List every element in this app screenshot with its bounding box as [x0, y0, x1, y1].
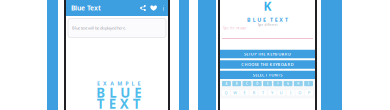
button[interactable]: CHOOSE THE KEYBOARD	[220, 60, 315, 69]
staticText: Type the message	[223, 26, 247, 30]
staticText: H	[297, 82, 299, 85]
staticText: E	[267, 82, 268, 85]
button[interactable]: P	[305, 90, 313, 95]
button[interactable]: W	[231, 90, 239, 95]
button[interactable]: A	[222, 81, 231, 86]
staticText: Y	[271, 90, 273, 95]
staticText: O	[298, 90, 301, 95]
staticText: CHOOSE THE KEYBOARD	[241, 62, 294, 67]
staticText: BLUE	[96, 84, 141, 101]
button[interactable]: G	[284, 81, 292, 86]
button[interactable]: E	[240, 90, 248, 95]
staticText: EXAMPLE	[97, 80, 141, 87]
staticText: C	[246, 82, 248, 85]
staticText: R	[253, 90, 255, 95]
button[interactable]: H	[294, 81, 303, 86]
staticText: A	[225, 82, 227, 85]
staticText: SETUP THE KEYBOARD	[244, 51, 291, 57]
button[interactable]: I	[286, 90, 294, 95]
staticText: I	[290, 90, 291, 95]
button[interactable]: E	[263, 81, 272, 86]
button[interactable]: F	[273, 81, 282, 86]
button[interactable]: U	[277, 90, 285, 95]
button[interactable]: Favorite	[148, 0, 159, 16]
button[interactable]: R	[250, 90, 258, 95]
staticText: U	[280, 90, 283, 95]
staticText: G	[287, 82, 289, 85]
staticText: E	[243, 90, 245, 95]
button[interactable]: SETUP THE KEYBOARD	[220, 50, 315, 58]
button[interactable]: Info	[159, 0, 167, 16]
staticText: K	[263, 0, 271, 14]
staticText: Type different	[257, 23, 277, 27]
button[interactable]: Share	[138, 0, 148, 16]
button[interactable]: C	[242, 81, 251, 86]
staticText: SELECT FONTS	[253, 72, 282, 78]
staticText: Blue text will be displayed here.	[72, 25, 126, 31]
staticText: T	[262, 90, 264, 95]
staticText: P	[308, 90, 310, 95]
staticText: W	[233, 90, 237, 95]
button[interactable]: D	[253, 81, 262, 86]
button[interactable]: Q	[222, 90, 230, 95]
staticText: D	[256, 82, 258, 85]
staticText: Blue Text	[71, 4, 101, 12]
button[interactable]: SELECT FONTS	[220, 71, 315, 79]
staticText: B	[236, 82, 238, 85]
button[interactable]: Y	[268, 90, 276, 95]
staticText: Q	[224, 90, 227, 95]
button[interactable]: B	[232, 81, 241, 86]
staticText: TEXT	[97, 95, 141, 110]
staticText: BLUE TEXT	[247, 16, 288, 23]
button[interactable]: O	[296, 90, 304, 95]
button[interactable]: T	[259, 90, 267, 95]
button[interactable]: I	[304, 81, 313, 86]
